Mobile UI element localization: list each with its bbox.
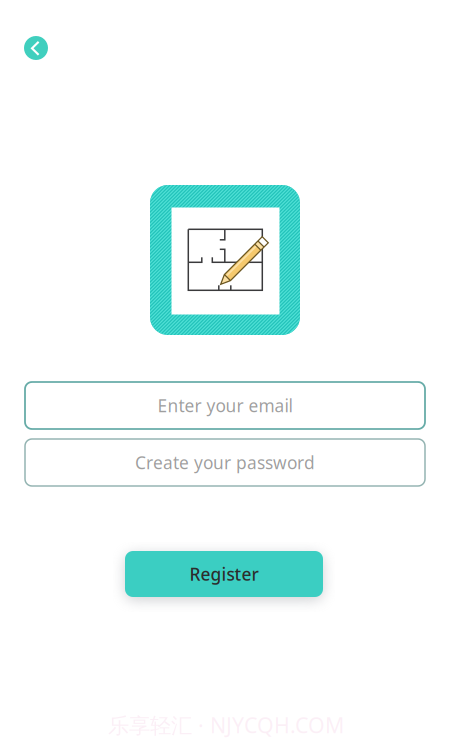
- staticText: 乐享轻汇 · NJYCQH.COM: [108, 711, 344, 739]
- button[interactable]: Enter your email: [25, 382, 425, 429]
- staticText: Enter your email: [157, 394, 292, 417]
- button[interactable]: Back: [24, 36, 48, 60]
- button[interactable]: Create your password: [25, 439, 425, 486]
- staticText: Create your password: [135, 451, 315, 474]
- staticText: Register: [189, 562, 258, 585]
- button[interactable]: Register: [125, 551, 323, 597]
